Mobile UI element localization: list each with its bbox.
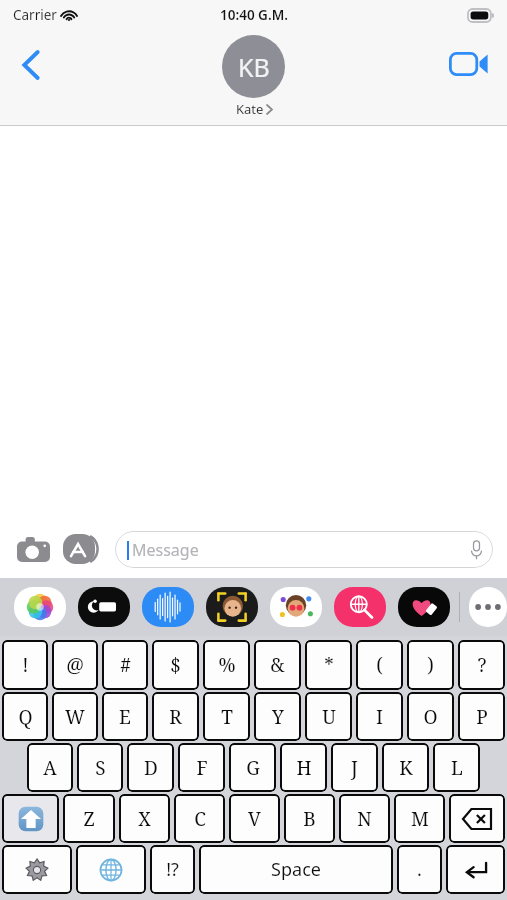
button[interactable]: FaceTime video call: [445, 44, 493, 84]
staticText: D: [144, 755, 158, 781]
button[interactable]: Back: [8, 42, 54, 88]
staticText: Kate: [236, 100, 264, 118]
staticText: F: [196, 755, 208, 781]
button[interactable]: More apps: [469, 587, 507, 627]
staticText: I: [376, 704, 383, 730]
button[interactable]: (: [356, 640, 403, 690]
button[interactable]: Backspace: [449, 794, 505, 843]
staticText: !: [22, 652, 29, 678]
button[interactable]: !: [2, 640, 48, 690]
button[interactable]: T: [203, 692, 250, 741]
staticText: *: [324, 652, 334, 678]
button[interactable]: Apple Cash: [78, 587, 130, 627]
button[interactable]: M: [394, 794, 445, 843]
button[interactable]: $: [152, 640, 199, 690]
button[interactable]: Change language: [76, 845, 146, 894]
button[interactable]: Photos: [14, 587, 66, 627]
staticText: Z: [83, 806, 95, 832]
button[interactable]: #images: [334, 587, 386, 627]
button[interactable]: *: [305, 640, 352, 690]
button[interactable]: Message: [115, 531, 493, 568]
button[interactable]: A: [27, 743, 73, 792]
button[interactable]: C: [174, 794, 225, 843]
button[interactable]: Memoji stickers: [270, 587, 322, 627]
staticText: L: [451, 755, 463, 781]
staticText: $: [170, 652, 181, 678]
button[interactable]: Settings: [2, 845, 72, 894]
staticText: N: [357, 806, 372, 832]
button[interactable]: O: [407, 692, 454, 741]
button[interactable]: L: [433, 743, 480, 792]
button[interactable]: U: [305, 692, 352, 741]
staticText: E: [119, 704, 131, 730]
staticText: K: [399, 755, 413, 781]
staticText: R: [169, 704, 182, 730]
staticText: Space: [271, 857, 321, 882]
button[interactable]: P: [458, 692, 505, 741]
button[interactable]: .: [397, 845, 442, 894]
staticText: !?: [166, 857, 179, 882]
staticText: V: [248, 806, 261, 832]
staticText: G: [246, 755, 260, 781]
button[interactable]: X: [119, 794, 170, 843]
button[interactable]: D: [127, 743, 174, 792]
button[interactable]: Z: [63, 794, 115, 843]
staticText: KB: [238, 50, 270, 84]
button[interactable]: KB: [222, 35, 285, 118]
button[interactable]: G: [229, 743, 276, 792]
staticText: B: [303, 806, 316, 832]
staticText: (: [376, 652, 383, 678]
button[interactable]: @: [52, 640, 98, 690]
staticText: ): [427, 652, 434, 678]
staticText: A: [43, 755, 57, 781]
staticText: C: [194, 806, 206, 832]
staticText: Message: [132, 539, 199, 561]
staticText: ?: [477, 652, 487, 678]
button[interactable]: S: [77, 743, 123, 792]
button[interactable]: #: [102, 640, 148, 690]
button[interactable]: %: [203, 640, 250, 690]
button[interactable]: H: [280, 743, 327, 792]
staticText: S: [95, 755, 106, 781]
button[interactable]: Y: [254, 692, 301, 741]
staticText: O: [423, 704, 438, 730]
staticText: U: [322, 704, 336, 730]
button[interactable]: Space: [199, 845, 393, 894]
staticText: T: [221, 704, 233, 730]
button[interactable]: Memoji: [206, 587, 258, 627]
button[interactable]: F: [178, 743, 225, 792]
button[interactable]: E: [102, 692, 148, 741]
button[interactable]: B: [284, 794, 335, 843]
staticText: Y: [272, 704, 284, 730]
button[interactable]: K: [382, 743, 429, 792]
button[interactable]: &: [254, 640, 301, 690]
button[interactable]: J: [331, 743, 378, 792]
button[interactable]: Return: [446, 845, 505, 894]
button[interactable]: Audio message: [142, 587, 194, 627]
staticText: P: [476, 704, 488, 730]
staticText: J: [351, 755, 358, 781]
staticText: Q: [18, 704, 33, 730]
staticText: Carrier: [13, 6, 57, 24]
button[interactable]: ): [407, 640, 454, 690]
staticText: @: [66, 652, 84, 678]
staticText: &: [270, 652, 285, 678]
button[interactable]: App Store: [62, 528, 104, 570]
button[interactable]: ?: [458, 640, 505, 690]
staticText: M: [411, 806, 429, 832]
button[interactable]: I: [356, 692, 403, 741]
button[interactable]: W: [52, 692, 98, 741]
button[interactable]: Camera: [14, 530, 52, 568]
button[interactable]: !?: [150, 845, 195, 894]
button[interactable]: Digital Touch: [398, 587, 450, 627]
button[interactable]: N: [339, 794, 390, 843]
staticText: 10:40 G.M.: [220, 6, 288, 24]
button[interactable]: R: [152, 692, 199, 741]
button[interactable]: V: [229, 794, 280, 843]
staticText: .: [417, 857, 422, 882]
staticText: H: [296, 755, 312, 781]
staticText: #: [120, 652, 131, 678]
staticText: %: [218, 652, 236, 678]
button[interactable]: Q: [2, 692, 48, 741]
button[interactable]: Shift: [2, 794, 59, 843]
